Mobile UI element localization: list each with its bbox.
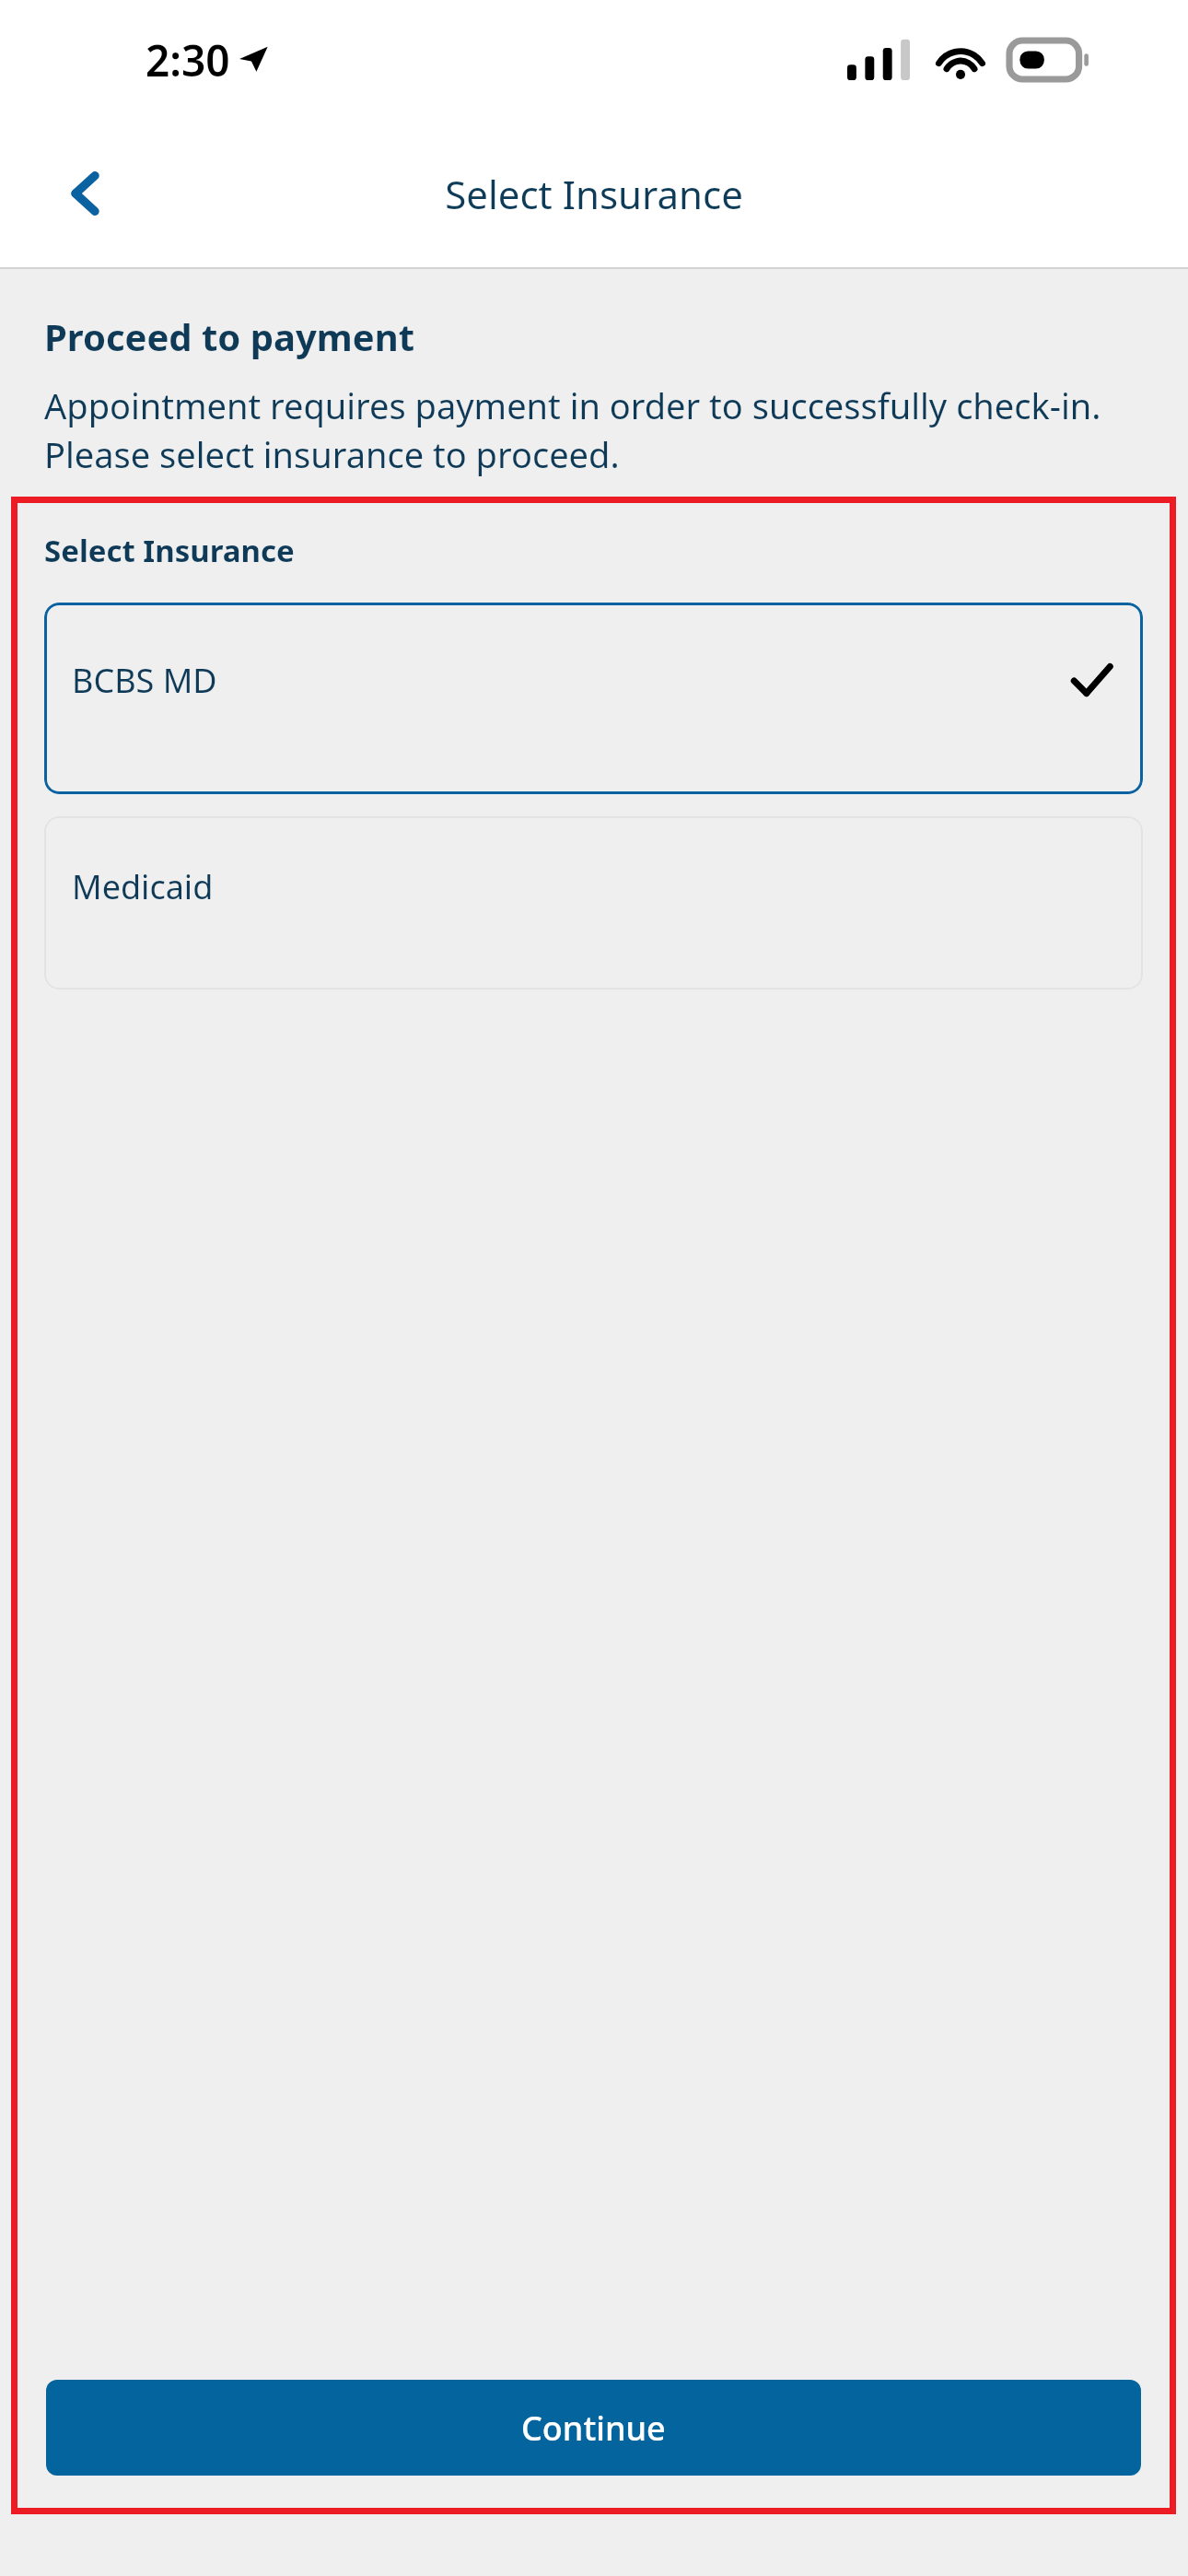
button[interactable]: Back [39, 146, 133, 240]
button[interactable]: Continue [46, 2380, 1141, 2476]
button[interactable]: Medicaid [44, 816, 1143, 989]
staticText: BCBS MD [72, 658, 217, 703]
staticText: Select Insurance [445, 168, 743, 220]
staticText: Select Insurance [44, 530, 295, 571]
staticText: Appointment requires payment in order to… [44, 381, 1153, 479]
staticText: Proceed to payment [44, 311, 415, 361]
other: Selected [1067, 656, 1115, 704]
staticText: Continue [521, 2406, 666, 2451]
button[interactable]: BCBS MD [44, 603, 1143, 794]
staticText: Medicaid [72, 864, 214, 909]
staticText: 2:30 [146, 31, 230, 89]
